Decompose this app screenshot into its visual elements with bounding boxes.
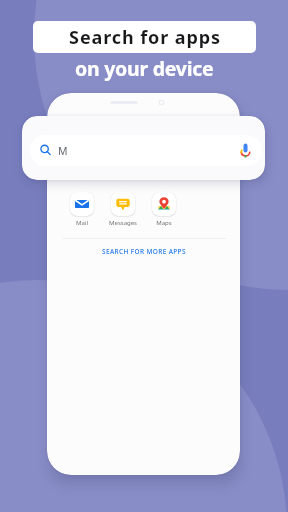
button[interactable]: Search for apps xyxy=(33,21,256,53)
button[interactable]: Mail xyxy=(61,192,102,227)
staticText: Mail xyxy=(76,219,88,227)
staticText: Maps xyxy=(156,219,172,227)
staticText: Messages xyxy=(109,219,137,227)
staticText: SEARCH FOR MORE APPS xyxy=(102,247,186,256)
staticText: M xyxy=(58,144,68,158)
staticText: on your device xyxy=(75,55,214,82)
button[interactable]: Messages xyxy=(102,192,143,227)
button[interactable]: Voice search xyxy=(238,143,253,158)
button[interactable]: M xyxy=(30,135,262,166)
button[interactable]: Maps xyxy=(143,192,184,227)
staticText: Search for apps xyxy=(69,25,221,50)
button[interactable]: SEARCH FOR MORE APPS xyxy=(94,242,194,261)
